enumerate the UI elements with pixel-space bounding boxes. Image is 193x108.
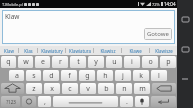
staticText: Klawisz (100, 48, 116, 54)
button[interactable]: t (70, 56, 86, 68)
staticText: y (94, 57, 98, 67)
button[interactable]: x (44, 83, 60, 94)
button[interactable]: , (38, 96, 51, 107)
button[interactable]: Home (178, 42, 192, 56)
staticText: ?123 (6, 99, 16, 105)
button[interactable]: Klaw (0, 46, 18, 55)
staticText: q (6, 57, 11, 67)
button[interactable]: Recent apps (178, 12, 192, 26)
staticText: Gotowe (147, 30, 169, 38)
button[interactable]: l (151, 70, 167, 81)
staticText: T-Mobile.pl (2, 2, 23, 7)
button[interactable]: a (9, 70, 24, 81)
button[interactable]: z (26, 83, 42, 94)
button[interactable]: r (52, 56, 68, 68)
button[interactable]: Shift (1, 83, 24, 94)
button[interactable]: s (26, 70, 41, 81)
button[interactable]: Back (178, 72, 192, 86)
staticText: Klawe (129, 48, 142, 54)
staticText: n (122, 84, 127, 94)
staticText: Klawisze (155, 48, 173, 54)
staticText: o (148, 57, 153, 67)
button[interactable]: Enter (151, 96, 176, 107)
button[interactable]: c (62, 83, 78, 94)
staticText: Klaw (5, 12, 20, 21)
staticText: u (112, 57, 117, 67)
staticText: 72% (152, 2, 160, 7)
button[interactable]: b (98, 83, 114, 94)
staticText: Klawiatury (41, 48, 63, 54)
staticText: p (166, 57, 171, 67)
staticText: b (104, 84, 109, 94)
staticText: m (139, 84, 146, 94)
staticText: g (85, 71, 90, 81)
button[interactable]: m (134, 83, 150, 94)
button[interactable]: e (35, 56, 50, 68)
staticText: i (131, 57, 133, 67)
staticText: Klas (24, 48, 33, 54)
staticText: . (126, 97, 128, 107)
staticText: k (139, 71, 143, 81)
button[interactable]: Gotowe (144, 28, 172, 40)
button[interactable]: j (115, 70, 131, 81)
button[interactable]: i (124, 56, 140, 68)
staticText: Klaw (4, 48, 14, 54)
staticText: c (68, 84, 72, 94)
button[interactable]: p (160, 56, 176, 68)
button[interactable]: . (120, 96, 133, 107)
staticText: d (49, 71, 54, 81)
button[interactable]: Backspace (152, 83, 176, 94)
staticText: s (32, 71, 36, 81)
button[interactable]: y (88, 56, 104, 68)
button[interactable]: Klawe (122, 46, 149, 55)
staticText: 14:04 (164, 1, 176, 7)
button[interactable]: ?123 (1, 96, 20, 107)
button[interactable]: k (133, 70, 149, 81)
button[interactable]: Klawisze (150, 46, 177, 55)
button[interactable]: o (142, 56, 158, 68)
button[interactable]: Klas (19, 46, 37, 55)
staticText: x (50, 84, 54, 94)
staticText: , (44, 97, 46, 107)
staticText: z (32, 84, 36, 94)
staticText: a (15, 71, 19, 81)
staticText: j (122, 71, 124, 81)
button[interactable]: Klawiatura (66, 46, 93, 55)
staticText: t (77, 57, 80, 67)
staticText: r (59, 57, 62, 67)
staticText: w (23, 57, 29, 67)
button[interactable]: Klawisz (94, 46, 121, 55)
staticText: f (68, 71, 71, 81)
button[interactable]: Klawiatury (38, 46, 65, 55)
button[interactable]: f (61, 70, 77, 81)
button[interactable]: g (79, 70, 95, 81)
button[interactable]: Klaw (2, 10, 175, 44)
button[interactable]: Emoji (22, 96, 36, 107)
button[interactable]: q (1, 56, 16, 68)
staticText: h (103, 71, 108, 81)
staticText: v (86, 84, 90, 94)
button[interactable]: d (43, 70, 59, 81)
staticText: e (41, 57, 45, 67)
button[interactable]: u (106, 56, 122, 68)
button[interactable]: v (80, 83, 96, 94)
staticText: Klawiatura (69, 48, 91, 54)
button[interactable]: Space (53, 96, 118, 107)
staticText: l (158, 71, 160, 81)
button[interactable]: n (116, 83, 132, 94)
button[interactable]: w (18, 56, 33, 68)
button[interactable]: Voice input (135, 96, 149, 107)
button[interactable]: h (97, 70, 113, 81)
